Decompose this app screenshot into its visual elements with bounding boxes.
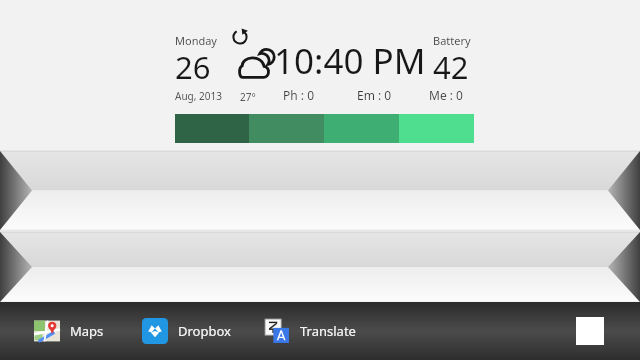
staticText: Em : 0 bbox=[357, 87, 392, 103]
staticText: Me : 0 bbox=[429, 87, 463, 103]
staticText: Maps bbox=[70, 322, 104, 340]
staticText: Battery bbox=[433, 33, 471, 48]
button[interactable]: Translate bbox=[264, 314, 356, 348]
button[interactable]: Maps bbox=[34, 314, 104, 348]
staticText: 26 bbox=[175, 46, 211, 88]
staticText: Aug, 2013 bbox=[175, 89, 222, 103]
button[interactable]: Dropbox bbox=[142, 314, 231, 348]
staticText: 10:40 PM bbox=[274, 37, 426, 85]
staticText: Dropbox bbox=[178, 322, 231, 340]
staticText: Monday bbox=[175, 33, 217, 48]
button[interactable]: Refresh weather bbox=[230, 27, 250, 47]
staticText: Ph : 0 bbox=[283, 87, 314, 103]
staticText: 27° bbox=[240, 90, 256, 104]
staticText: 42 bbox=[433, 46, 469, 88]
staticText: Translate bbox=[300, 322, 356, 340]
